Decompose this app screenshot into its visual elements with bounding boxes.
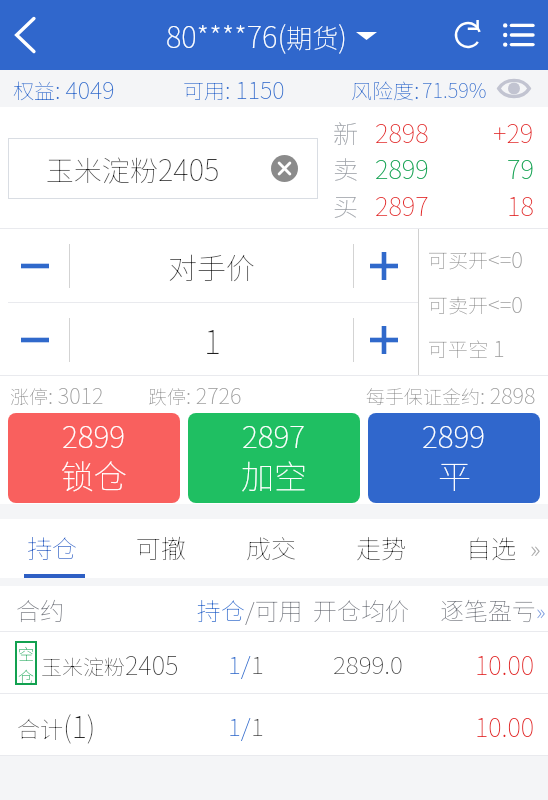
staticText: 2897 [242, 413, 306, 457]
staticText: 1 [204, 316, 221, 363]
staticText: 开仓均价 [313, 592, 409, 627]
staticText: 1/ [228, 707, 251, 743]
staticText: 锁仓 [61, 451, 127, 499]
staticText: 逐笔盈亏 [440, 592, 536, 627]
staticText: 平 [438, 451, 471, 499]
staticText: 持仓 [27, 529, 78, 565]
button[interactable]: Menu [494, 11, 542, 59]
staticText: 每手保证金约: 2898 [366, 379, 536, 411]
button[interactable]: 2899 [368, 413, 540, 503]
staticText: 涨停: 3012 [10, 379, 104, 411]
button[interactable]: Refresh [446, 13, 490, 57]
button[interactable]: Hide balance [495, 70, 533, 107]
button[interactable]: Increase quantity [352, 303, 416, 376]
staticText: 空 [18, 641, 35, 664]
staticText: 加空 [241, 451, 307, 499]
staticText: 可撤 [136, 529, 187, 565]
button[interactable]: 成交 [218, 519, 328, 575]
staticText: 79 [507, 149, 534, 186]
staticText: 1/ [228, 645, 251, 681]
button[interactable]: Decrease price [0, 229, 69, 302]
staticText: 2898 [375, 113, 429, 150]
staticText: 合约 [16, 592, 64, 627]
staticText: +29 [493, 113, 534, 150]
button[interactable]: 空 [0, 632, 548, 694]
staticText: 2899 [422, 413, 486, 457]
staticText: » [530, 529, 541, 565]
staticText: 可买开<=0 [428, 242, 523, 274]
staticText: 1 [251, 707, 264, 743]
staticText: 1 [251, 645, 264, 681]
staticText: 2897 [375, 186, 429, 223]
staticText: 2899.0 [333, 645, 403, 681]
staticText: 玉米淀粉2405 [41, 645, 179, 682]
staticText: » [536, 594, 546, 626]
staticText: 10.00 [475, 707, 535, 744]
staticText: 18 [507, 186, 534, 223]
button[interactable]: Increase price [352, 229, 416, 302]
staticText: 仓 [18, 664, 35, 685]
staticText: 成交 [246, 529, 297, 565]
staticText: 新 [333, 114, 359, 150]
staticText: 可卖开<=0 [428, 287, 523, 319]
button[interactable]: 2899 [8, 413, 180, 503]
staticText: 权益: 4049 [13, 72, 115, 106]
staticText: 对手价 [168, 245, 256, 287]
button[interactable]: 走势 [328, 519, 438, 575]
button[interactable]: 玉米淀粉2405 [8, 138, 318, 199]
staticText: 卖 [333, 150, 359, 186]
button[interactable]: More tabs [522, 519, 548, 575]
staticText: 可用: 1150 [183, 72, 285, 106]
staticText: 买 [333, 187, 359, 223]
staticText: 10.00 [475, 645, 535, 682]
staticText: 2899 [375, 149, 429, 186]
staticText: 可平空 1 [428, 331, 505, 363]
button[interactable]: 自选 [438, 519, 548, 575]
staticText: 自选 [466, 529, 517, 565]
staticText: 2899 [62, 413, 126, 457]
staticText: 合计(1) [17, 704, 96, 746]
staticText: 跌停: 2726 [148, 379, 242, 411]
staticText: 71.59% [422, 75, 487, 104]
button[interactable]: 2897 [188, 413, 360, 503]
button[interactable]: Back [0, 0, 50, 70]
staticText: 风险度: [351, 72, 420, 106]
button[interactable]: 持仓 [0, 519, 109, 575]
staticText: /可用 [245, 592, 303, 627]
button[interactable]: 可撤 [109, 519, 218, 575]
staticText: 玉米淀粉2405 [46, 147, 220, 190]
staticText: 80****76(期货) [166, 14, 347, 57]
button[interactable]: Decrease quantity [0, 303, 69, 376]
staticText: 走势 [356, 529, 407, 565]
staticText: 持仓 [197, 592, 245, 627]
